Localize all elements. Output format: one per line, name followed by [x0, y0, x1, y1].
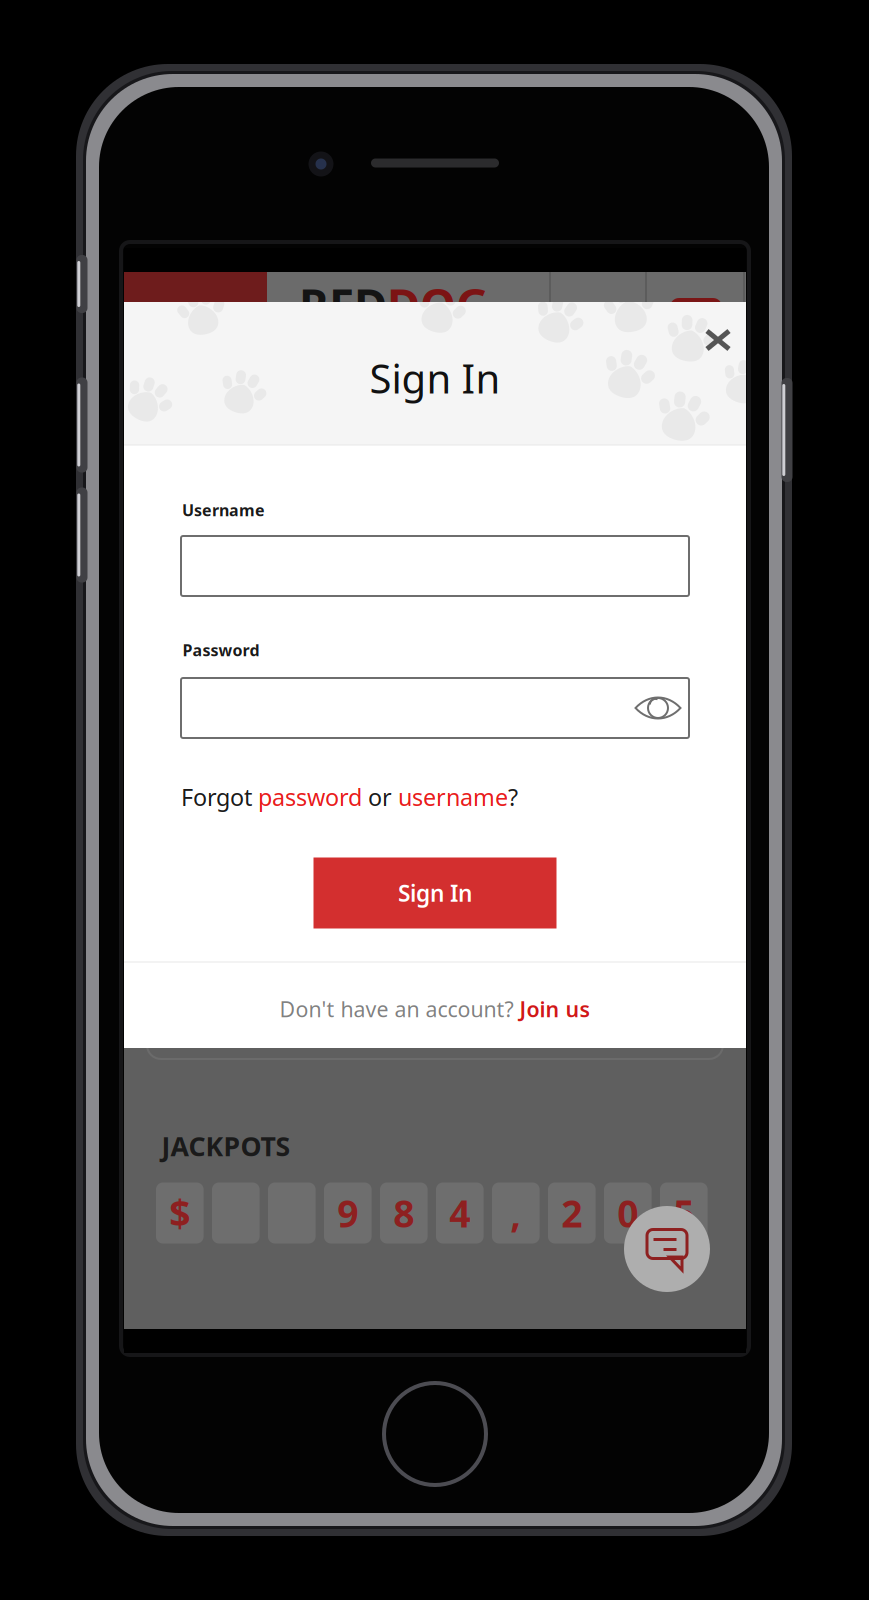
- staticText: 2: [561, 1188, 582, 1238]
- staticText: RED: [299, 273, 387, 335]
- staticText: username: [398, 781, 508, 813]
- button[interactable]: password: [258, 781, 362, 813]
- staticText: Sign In: [398, 878, 472, 908]
- staticText: JACKPOTS: [161, 1128, 290, 1164]
- staticText: Don't have an account?: [279, 994, 519, 1024]
- staticText: 5: [673, 1188, 694, 1238]
- staticText: 4: [449, 1188, 470, 1238]
- staticText: Sign In: [369, 351, 500, 405]
- staticText: ,: [510, 1188, 521, 1238]
- button[interactable]: Show password: [627, 685, 689, 731]
- staticText: Join us: [519, 994, 590, 1024]
- staticText: DOG: [387, 273, 489, 335]
- staticText: 0: [617, 1188, 638, 1238]
- button[interactable]: Open chat: [624, 1206, 710, 1292]
- staticText: 8: [393, 1188, 414, 1238]
- button[interactable]: username: [398, 781, 508, 813]
- staticText: ?: [508, 781, 518, 813]
- button[interactable]: Join us: [519, 994, 590, 1024]
- staticText: $: [169, 1188, 190, 1238]
- button[interactable]: Close: [690, 314, 746, 366]
- staticText: or: [362, 781, 398, 813]
- staticText: password: [258, 781, 362, 813]
- staticText: Username: [182, 499, 265, 521]
- staticText: Password: [182, 639, 259, 661]
- button[interactable]: Sign In: [313, 857, 556, 928]
- staticText: 9: [337, 1188, 358, 1238]
- staticText: Forgot: [181, 781, 258, 813]
